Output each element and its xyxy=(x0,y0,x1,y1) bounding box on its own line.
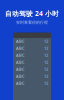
staticText: ABC xyxy=(16,67,25,72)
staticText: ABC xyxy=(16,74,25,79)
staticText: 实时查看你的行程 xyxy=(16,20,48,25)
staticText: ABC xyxy=(16,39,25,44)
staticText: ABC xyxy=(16,46,25,51)
staticText: 12 xyxy=(44,81,48,86)
staticText: 12 xyxy=(44,67,48,72)
staticText: 自动驾驶 24 小时 xyxy=(5,9,59,18)
staticText: ABC xyxy=(16,53,25,58)
staticText: 12 xyxy=(44,53,48,58)
staticText: 12 xyxy=(44,39,48,44)
staticText: ABC xyxy=(16,81,25,86)
staticText: 12 xyxy=(44,74,48,79)
staticText: ABC xyxy=(16,60,25,65)
staticText: 12 xyxy=(44,46,48,51)
staticText: 12 xyxy=(44,60,48,65)
